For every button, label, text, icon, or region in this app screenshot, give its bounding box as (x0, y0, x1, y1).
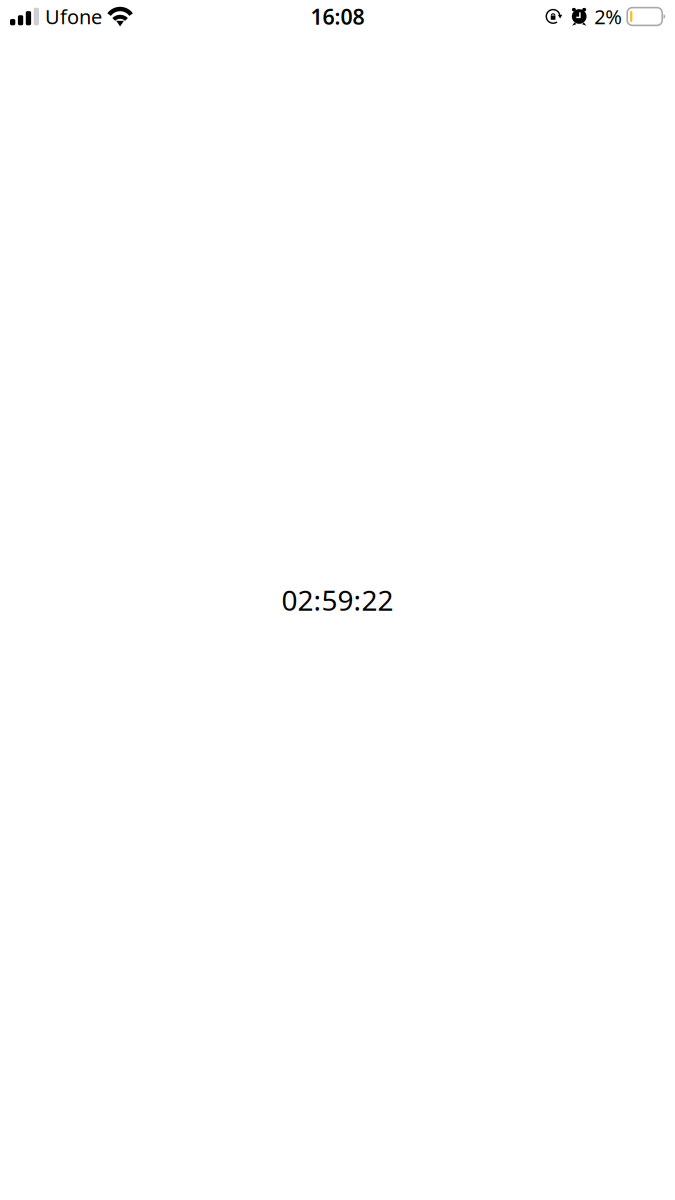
staticText: Ufone (45, 3, 102, 30)
staticText: 2% (594, 3, 622, 30)
staticText: 16:08 (310, 2, 364, 31)
staticText: 02:59:22 (281, 581, 393, 619)
button[interactable]: 02:59:22 (257, 569, 417, 631)
